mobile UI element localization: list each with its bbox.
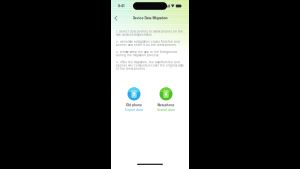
staticText: Export data — [125, 108, 143, 112]
staticText: 4. After the migration, the data from th… — [116, 61, 183, 70]
staticText: Import data — [157, 108, 175, 112]
button[interactable]: New phone — [156, 87, 176, 112]
button[interactable]: Back — [111, 12, 122, 24]
staticText: 9:41 — [118, 4, 124, 8]
staticText: 1. Select [Old phone] or [New phone] on … — [116, 30, 183, 36]
staticText: 3. Please keep the app in the foreground… — [116, 50, 177, 57]
staticText: 2. Generate a [migration code] from the … — [116, 40, 180, 47]
staticText: Device Data Migration — [132, 16, 167, 20]
button[interactable]: Old phone — [124, 87, 144, 112]
staticText: Old phone — [126, 103, 142, 107]
staticText: New phone — [157, 103, 174, 107]
